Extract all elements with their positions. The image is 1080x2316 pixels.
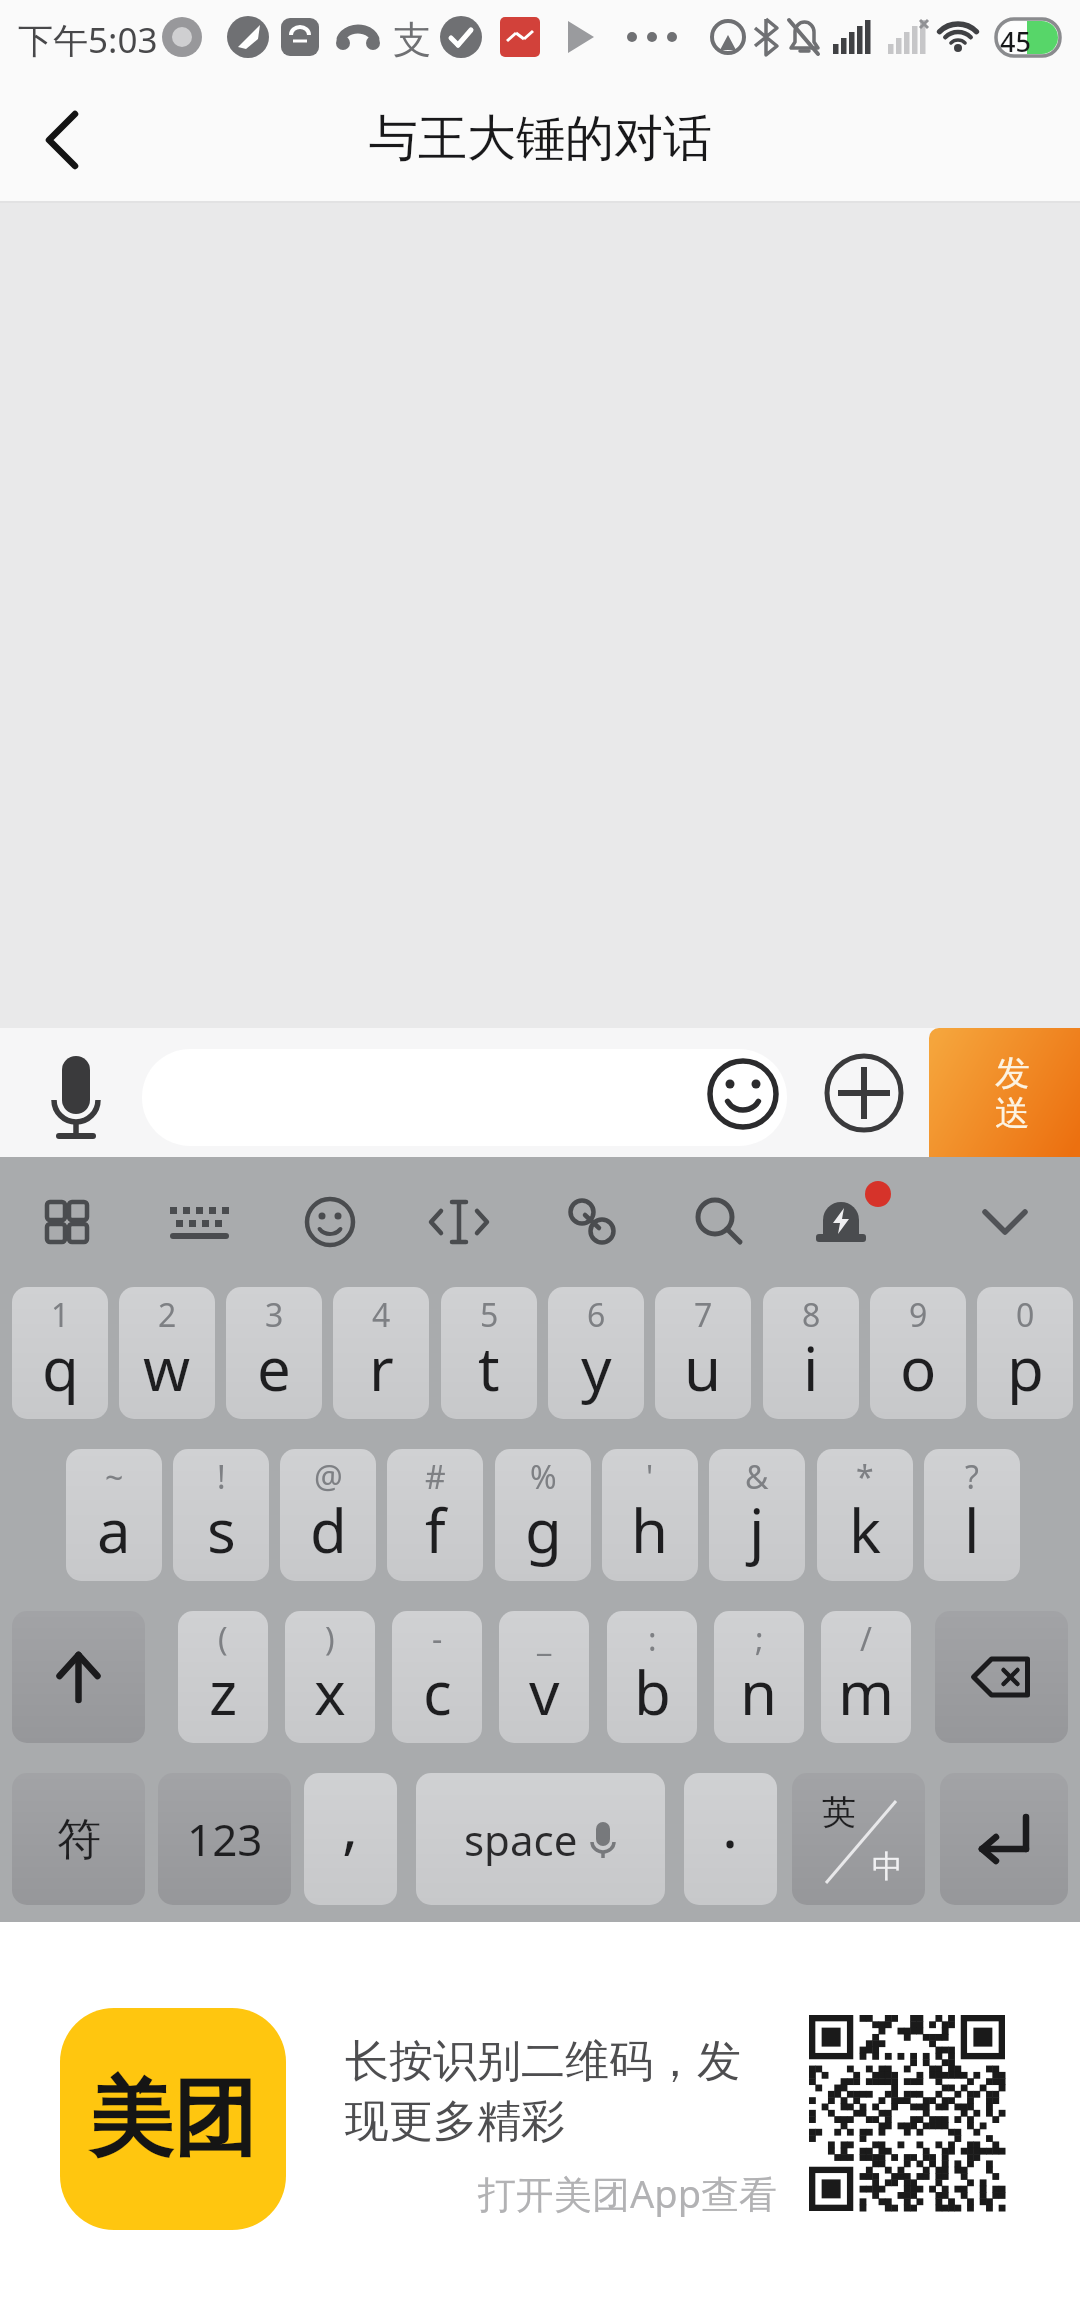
button[interactable]: 9: [870, 1287, 966, 1419]
button[interactable]: [940, 1773, 1068, 1905]
staticText: 现更多精彩: [345, 2094, 565, 2149]
button[interactable]: -: [392, 1611, 482, 1743]
staticText: 0: [1016, 1293, 1035, 1337]
staticText: !: [217, 1455, 226, 1499]
button[interactable]: 2: [119, 1287, 215, 1419]
staticText: g: [525, 1489, 562, 1571]
staticText: 支: [393, 16, 431, 64]
button[interactable]: #: [387, 1449, 483, 1581]
staticText: ': [646, 1455, 654, 1499]
button[interactable]: /: [821, 1611, 911, 1743]
button[interactable]: [935, 1611, 1068, 1743]
staticText: *: [856, 1455, 874, 1499]
button[interactable]: [552, 1182, 632, 1262]
button[interactable]: [823, 1052, 905, 1134]
button[interactable]: ~: [66, 1449, 162, 1581]
button[interactable]: [159, 1182, 239, 1262]
button[interactable]: [792, 1773, 925, 1905]
staticText: s: [207, 1489, 236, 1571]
button[interactable]: [419, 1182, 499, 1262]
button[interactable]: [680, 1182, 760, 1262]
button[interactable]: !: [173, 1449, 269, 1581]
button[interactable]: 5: [441, 1287, 537, 1419]
button[interactable]: [27, 1182, 107, 1262]
staticText: a: [97, 1489, 131, 1571]
button[interactable]: _: [499, 1611, 589, 1743]
staticText: p: [1007, 1327, 1044, 1409]
button[interactable]: *: [817, 1449, 913, 1581]
staticText: d: [310, 1489, 347, 1571]
staticText: 45: [1000, 23, 1031, 60]
staticText: 发 送: [995, 1051, 1030, 1135]
button[interactable]: 0: [977, 1287, 1073, 1419]
button[interactable]: [20, 95, 110, 185]
button[interactable]: 8: [763, 1287, 859, 1419]
staticText: z: [209, 1651, 238, 1733]
button[interactable]: %: [495, 1449, 591, 1581]
button[interactable]: [290, 1182, 370, 1262]
staticText: 3: [265, 1293, 284, 1337]
button[interactable]: ;: [714, 1611, 804, 1743]
staticText: -: [432, 1617, 443, 1661]
staticText: 9: [909, 1293, 928, 1337]
staticText: 中: [872, 1847, 903, 1886]
button[interactable]: .: [684, 1773, 777, 1905]
button[interactable]: 4: [333, 1287, 429, 1419]
staticText: space: [464, 1811, 578, 1868]
staticText: ?: [965, 1455, 979, 1499]
staticText: e: [257, 1327, 291, 1409]
button[interactable]: 3: [226, 1287, 322, 1419]
button[interactable]: 发 送: [929, 1028, 1080, 1157]
staticText: 美团: [89, 2066, 257, 2172]
staticText: ,: [342, 1784, 359, 1866]
button[interactable]: [12, 1611, 145, 1743]
button[interactable]: 美团: [60, 2008, 286, 2230]
button[interactable]: (: [178, 1611, 268, 1743]
staticText: ~: [105, 1455, 124, 1499]
button[interactable]: @: [280, 1449, 376, 1581]
staticText: @: [314, 1455, 343, 1499]
button[interactable]: [142, 1049, 787, 1146]
button[interactable]: 7: [655, 1287, 751, 1419]
staticText: w: [143, 1327, 191, 1409]
staticText: %: [530, 1455, 557, 1499]
button[interactable]: 6: [548, 1287, 644, 1419]
staticText: :: [648, 1617, 657, 1661]
staticText: 7: [694, 1293, 713, 1337]
button[interactable]: space: [416, 1773, 665, 1905]
staticText: t: [478, 1327, 500, 1409]
button[interactable]: [801, 1182, 881, 1262]
button[interactable]: [40, 1048, 114, 1142]
staticText: 长按识别二维码，发: [345, 2034, 741, 2089]
staticText: #: [425, 1455, 446, 1499]
staticText: 8: [802, 1293, 821, 1337]
staticText: l: [964, 1489, 980, 1571]
staticText: 2: [158, 1293, 177, 1337]
button[interactable]: [703, 1053, 783, 1133]
button[interactable]: ,: [304, 1773, 397, 1905]
staticText: (: [218, 1617, 228, 1661]
staticText: n: [740, 1651, 778, 1733]
staticText: 下午5:03: [18, 16, 158, 64]
button[interactable]: 123: [158, 1773, 291, 1905]
staticText: .: [722, 1784, 739, 1866]
staticText: &: [745, 1455, 769, 1499]
staticText: 打开美团App查看: [478, 2167, 778, 2219]
staticText: h: [631, 1489, 669, 1571]
staticText: j: [749, 1489, 765, 1571]
button[interactable]: :: [607, 1611, 697, 1743]
staticText: u: [684, 1327, 722, 1409]
staticText: k: [849, 1489, 882, 1571]
button[interactable]: ): [285, 1611, 375, 1743]
staticText: 与王大锤的对话: [369, 108, 712, 170]
button[interactable]: ?: [924, 1449, 1020, 1581]
button[interactable]: ': [602, 1449, 698, 1581]
staticText: /: [860, 1617, 872, 1661]
staticText: 符: [57, 1812, 101, 1867]
staticText: 6: [587, 1293, 606, 1337]
button[interactable]: 1: [12, 1287, 108, 1419]
button[interactable]: 符: [12, 1773, 145, 1905]
staticText: _: [537, 1617, 552, 1661]
button[interactable]: [965, 1182, 1045, 1262]
button[interactable]: &: [709, 1449, 805, 1581]
